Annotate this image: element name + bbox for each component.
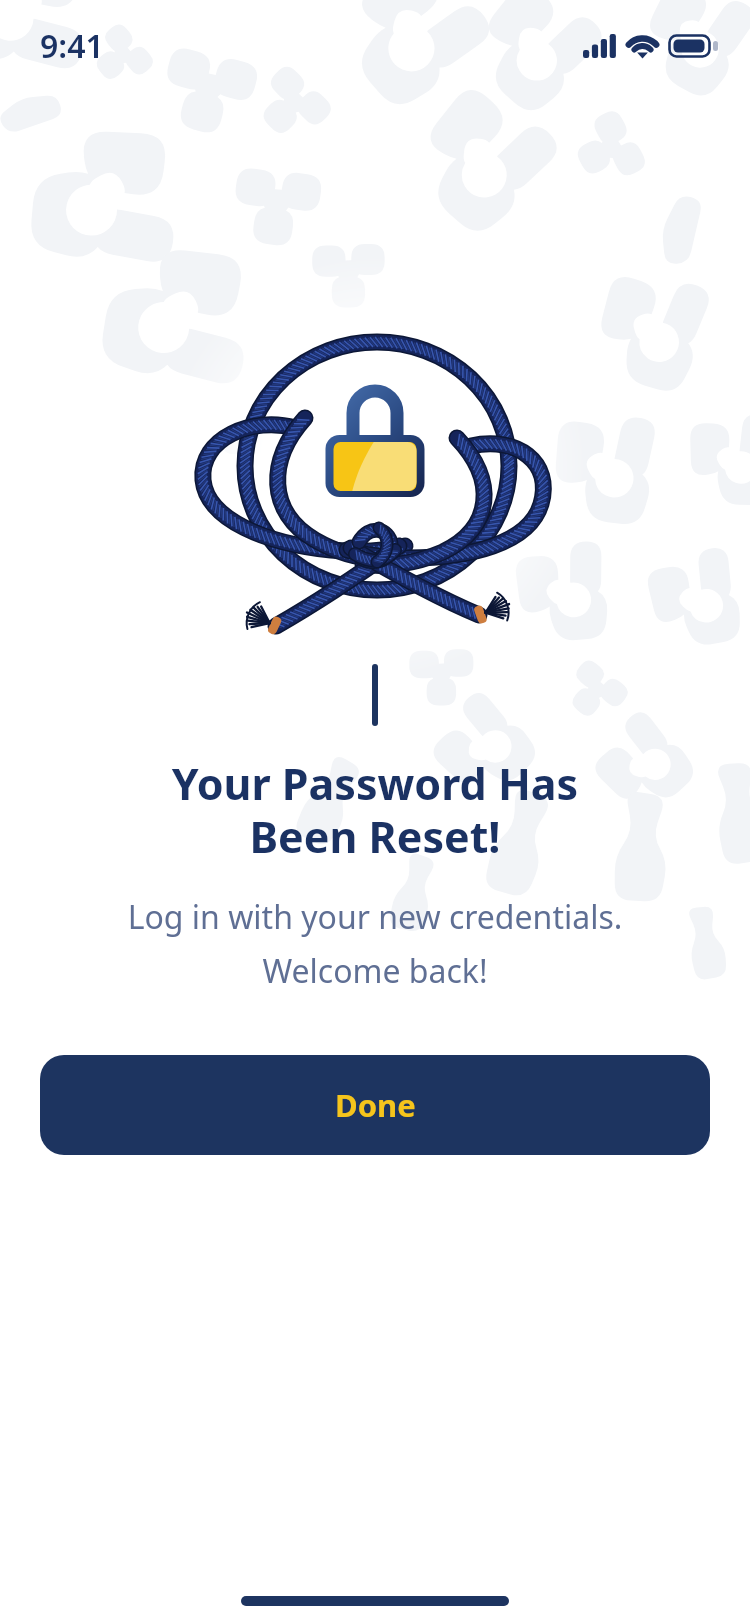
staticText: 9:41 bbox=[40, 24, 104, 68]
other: Battery bbox=[668, 34, 720, 58]
staticText: Done bbox=[335, 1084, 416, 1126]
other: Secured padlock and lasso bbox=[175, 292, 575, 662]
other: Cellular signal bbox=[583, 34, 616, 58]
other: Wi-Fi bbox=[627, 34, 658, 58]
button[interactable]: Done bbox=[40, 1055, 710, 1155]
staticText: Log in with your new credentials. Welcom… bbox=[0, 895, 750, 993]
staticText: Your Password Has Been Reset! bbox=[0, 754, 750, 865]
